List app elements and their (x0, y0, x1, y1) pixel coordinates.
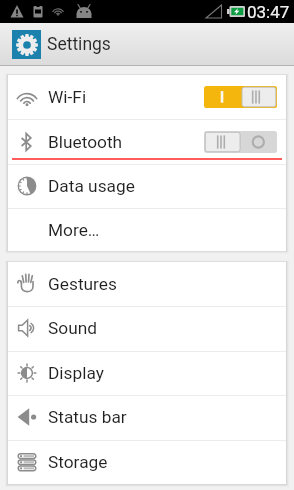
staticText: Settings (47, 34, 111, 55)
button[interactable]: Wi-Fi (8, 75, 286, 119)
button[interactable]: Wi-Fi on (204, 86, 277, 108)
staticText: Data usage (48, 176, 135, 196)
staticText: 03:47 (247, 2, 290, 22)
staticText: Bluetooth (48, 132, 123, 152)
button[interactable]: More… (8, 208, 286, 251)
staticText: Sound (48, 318, 97, 338)
button[interactable]: Display (8, 351, 286, 395)
button[interactable]: Data usage (8, 164, 286, 208)
button[interactable]: Bluetooth (8, 119, 286, 164)
staticText: More… (48, 220, 100, 240)
staticText: Wi-Fi (48, 87, 87, 107)
staticText: Storage (48, 452, 108, 472)
button[interactable]: Settings (0, 23, 294, 66)
staticText: Display (48, 363, 104, 383)
button[interactable]: Bluetooth off (204, 131, 277, 153)
staticText: Gestures (48, 274, 117, 294)
button[interactable]: Storage (8, 440, 286, 484)
staticText: Status bar (48, 407, 127, 427)
button[interactable]: Status bar (8, 395, 286, 439)
button[interactable]: Gestures (8, 262, 286, 306)
button[interactable]: Sound (8, 306, 286, 350)
